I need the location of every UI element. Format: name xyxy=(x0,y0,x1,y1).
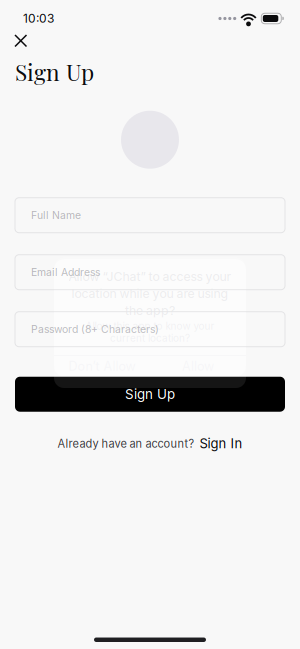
staticText: Full Name xyxy=(31,209,81,221)
staticText: 10:03 xyxy=(23,11,54,26)
staticText: the app? xyxy=(125,303,175,318)
button[interactable]: Sign Up xyxy=(15,377,285,412)
staticText: Allow “JChat” to access your xyxy=(68,269,231,284)
staticText: Already have an account? xyxy=(57,437,194,450)
staticText: Allow this app to know your xyxy=(85,320,214,332)
staticText: Sign Up xyxy=(15,56,94,87)
staticText: Sign In xyxy=(199,436,242,451)
button[interactable]: Close xyxy=(0,28,36,53)
button[interactable]: Sign In xyxy=(199,436,242,451)
staticText: Password (8+ Characters) xyxy=(31,323,159,335)
staticText: location while you are using xyxy=(71,286,228,301)
staticText: Sign Up xyxy=(125,386,175,402)
staticText: Email Address xyxy=(31,266,100,278)
staticText: current location? xyxy=(110,332,190,344)
